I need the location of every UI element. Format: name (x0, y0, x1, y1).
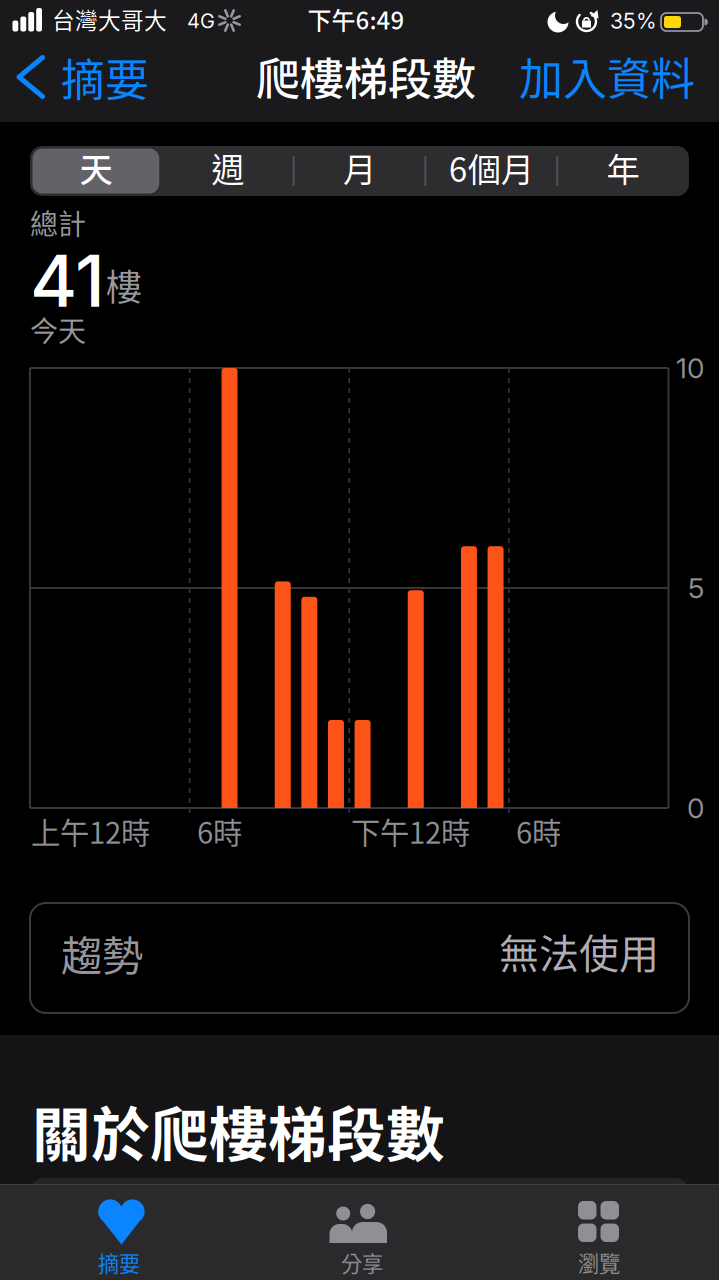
button[interactable]: 6個月 (425, 142, 557, 192)
staticText: 總計 (30, 202, 86, 243)
staticText: 6個月 (449, 143, 534, 192)
staticText: 加入資料 (519, 44, 695, 108)
staticText: 今天 (30, 309, 86, 350)
staticText: 下午6:49 (307, 2, 404, 36)
staticText: 上午12時 (31, 810, 150, 852)
staticText: 年 (607, 143, 640, 192)
staticText: 摘要 (98, 1247, 140, 1278)
staticText: 摘要 (61, 45, 149, 109)
staticText: 週 (211, 143, 244, 192)
staticText: 月 (343, 143, 376, 192)
staticText: 分享 (341, 1247, 383, 1278)
staticText: 6時 (197, 810, 242, 852)
button[interactable]: 分享 (240, 1184, 480, 1280)
staticText: 天 (79, 143, 112, 192)
button[interactable]: 加入資料 (515, 45, 695, 107)
button[interactable]: 年 (557, 142, 689, 192)
button[interactable]: 趨勢 (30, 903, 689, 1013)
staticText: 爬樓梯段數 (256, 44, 476, 108)
staticText: 35% (610, 8, 657, 34)
staticText: 台灣大哥大 (52, 3, 167, 35)
staticText: 瀏覽 (578, 1247, 620, 1278)
staticText: 6時 (516, 810, 561, 852)
staticText: 趨勢 (61, 923, 143, 983)
staticText: 41 (30, 238, 105, 323)
button[interactable]: 摘要 (0, 46, 175, 108)
staticText: 0 (687, 791, 704, 824)
staticText: 10 (676, 351, 704, 384)
button[interactable]: 瀏覽 (479, 1184, 719, 1280)
button[interactable]: 摘要 (0, 1184, 240, 1280)
staticText: 下午12時 (351, 810, 470, 852)
button[interactable]: 週 (162, 142, 294, 192)
staticText: 關於爬樓梯段數 (32, 1088, 445, 1173)
button[interactable]: 天 (30, 142, 162, 192)
staticText: 4G (187, 9, 215, 33)
button[interactable]: 月 (294, 142, 425, 192)
staticText: 5 (688, 571, 704, 604)
staticText: 無法使用 (499, 922, 659, 980)
staticText: 樓 (106, 259, 142, 311)
